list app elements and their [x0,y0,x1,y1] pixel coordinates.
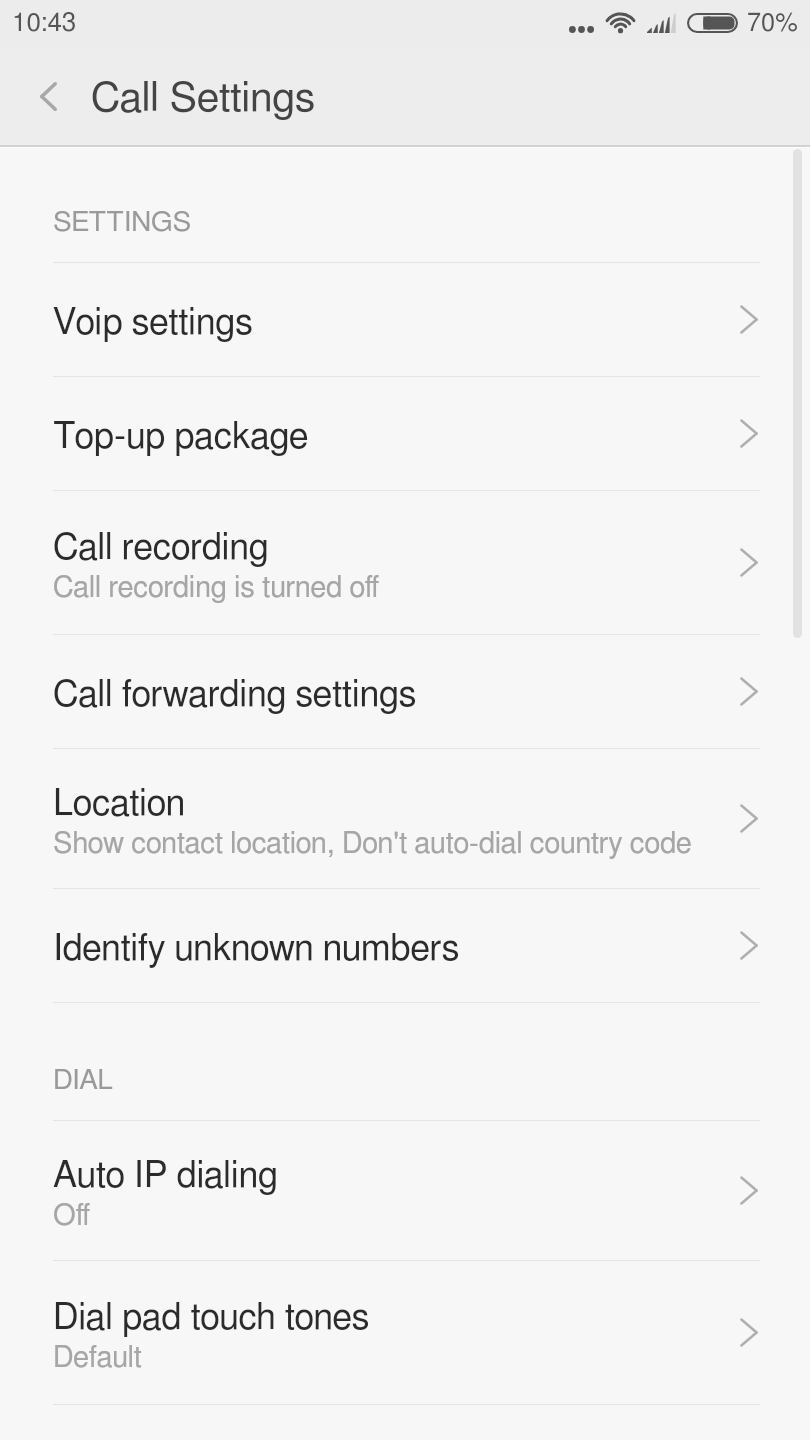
staticText: DIAL [53,1067,114,1095]
staticText: Call recording is turned off [53,574,380,603]
staticText: SETTINGS [53,209,192,237]
staticText: Voip settings [53,305,253,341]
button[interactable]: Voip settings [0,263,810,376]
staticText: Location [53,786,186,822]
staticText: Off [53,1202,91,1231]
staticText: Identify unknown numbers [53,931,460,967]
staticText: Call recording [53,530,269,566]
button[interactable]: Back [12,61,84,133]
staticText: Dial pad touch tones [53,1300,370,1336]
button[interactable]: Call forwarding settings [0,635,810,748]
button[interactable]: Location [0,749,810,888]
button[interactable]: Top-up package [0,377,810,490]
button[interactable]: Call recording [0,491,810,634]
staticText: Default [53,1344,142,1373]
button[interactable]: Identify unknown numbers [0,889,810,1002]
staticText: Auto IP dialing [53,1158,278,1194]
staticText: 10:43 [12,10,77,36]
button[interactable]: Auto IP dialing [0,1121,810,1260]
staticText: Call Settings [91,78,315,119]
staticText: Call forwarding settings [53,677,417,713]
staticText: 70% [747,11,798,36]
staticText: Top-up package [53,419,309,455]
staticText: Show contact location, Don't auto-dial c… [53,830,692,859]
button[interactable]: Dial pad touch tones [0,1261,810,1404]
